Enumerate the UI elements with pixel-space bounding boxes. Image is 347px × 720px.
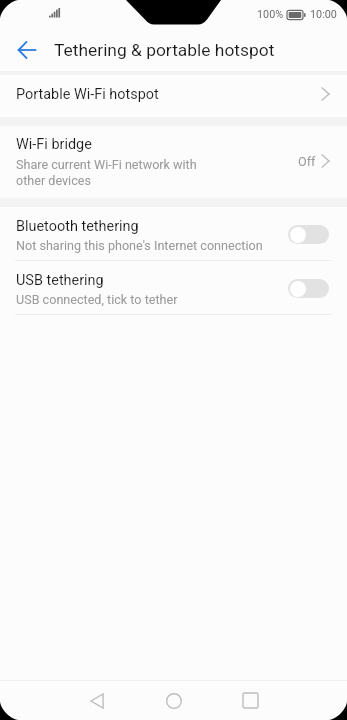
staticText: USB tethering xyxy=(16,272,104,289)
button[interactable]: Back xyxy=(58,681,135,720)
staticText: Wi-Fi bridge xyxy=(16,136,92,153)
staticText: Bluetooth tethering xyxy=(16,218,139,235)
staticText: 100% xyxy=(257,8,284,21)
staticText: USB connected, tick to tether xyxy=(16,292,178,307)
button[interactable]: Back xyxy=(0,28,44,71)
staticText: 10:00 xyxy=(310,8,337,21)
button[interactable]: Portable Wi-Fi hotspot xyxy=(0,75,347,117)
button[interactable]: Recents xyxy=(212,681,289,720)
staticText: Tethering & portable hotspot xyxy=(54,40,275,60)
button[interactable]: Bluetooth tethering xyxy=(0,207,347,260)
button[interactable]: USB tethering xyxy=(0,261,347,314)
staticText: Portable Wi-Fi hotspot xyxy=(16,86,159,103)
button[interactable]: Wi-Fi bridge xyxy=(0,126,347,198)
button[interactable]: Home xyxy=(135,681,212,720)
button[interactable]: Toggle xyxy=(288,279,329,298)
staticText: Share current Wi-Fi network with other d… xyxy=(16,157,197,188)
staticText: Off xyxy=(298,154,316,169)
button[interactable]: Toggle xyxy=(288,225,329,244)
staticText: Not sharing this phone's Internet connec… xyxy=(16,238,263,253)
